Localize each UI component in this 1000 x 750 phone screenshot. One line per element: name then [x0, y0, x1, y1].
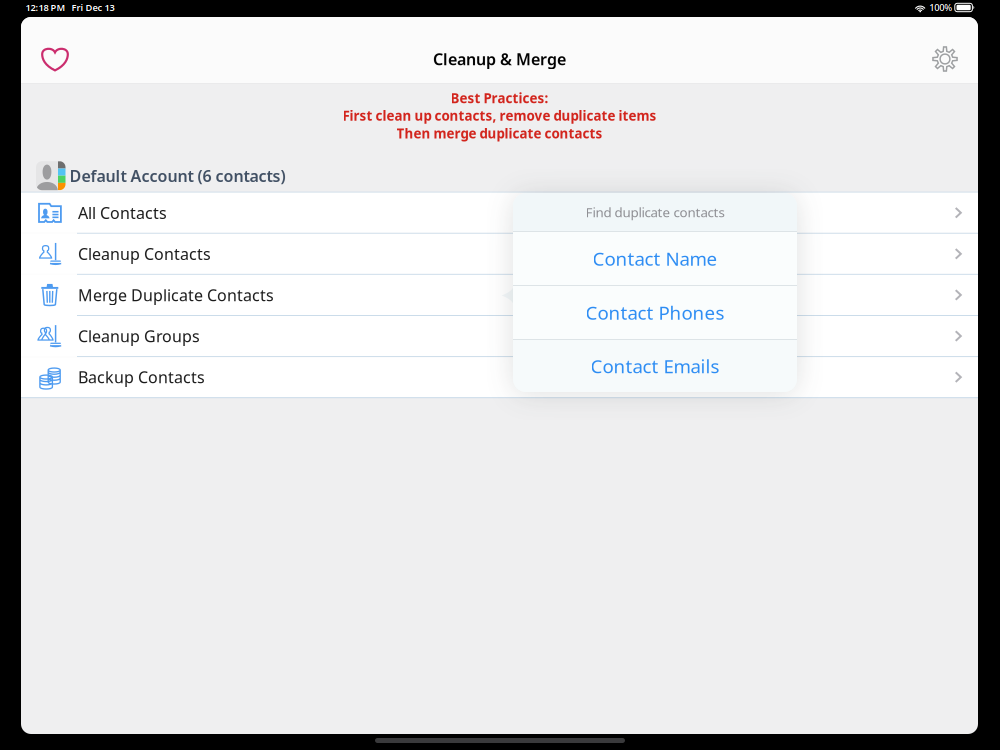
- staticText: Default Account (6 contacts): [69, 165, 285, 186]
- button[interactable]: All Contacts: [21, 193, 978, 233]
- staticText: Merge Duplicate Contacts: [78, 284, 274, 305]
- staticText: Contact Phones: [585, 300, 724, 325]
- button[interactable]: Cleanup Groups: [21, 316, 978, 356]
- staticText: Backup Contacts: [78, 366, 205, 388]
- staticText: Then merge duplicate contacts: [396, 125, 602, 142]
- button[interactable]: Settings: [916, 36, 974, 82]
- staticText: Best Practices:: [450, 89, 548, 107]
- button[interactable]: Backup Contacts: [21, 357, 978, 397]
- button[interactable]: Contact Phones: [513, 286, 797, 339]
- button[interactable]: Cleanup Contacts: [21, 234, 978, 274]
- staticText: Cleanup Groups: [78, 325, 200, 347]
- staticText: First clean up contacts, remove duplicat…: [342, 107, 656, 124]
- staticText: 12:18 PM: [25, 1, 65, 14]
- button[interactable]: Favorites: [26, 36, 84, 82]
- staticText: Cleanup Contacts: [78, 243, 211, 264]
- staticText: 100%: [929, 1, 952, 14]
- staticText: Contact Name: [592, 246, 717, 271]
- staticText: Cleanup & Merge: [433, 48, 566, 70]
- staticText: All Contacts: [78, 202, 167, 223]
- button[interactable]: Contact Name: [513, 232, 797, 285]
- staticText: Find duplicate contacts: [585, 203, 724, 221]
- button[interactable]: Merge Duplicate Contacts: [21, 275, 978, 315]
- button[interactable]: Contact Emails: [513, 340, 797, 392]
- staticText: Fri Dec 13: [71, 1, 114, 14]
- staticText: Contact Emails: [590, 354, 719, 378]
